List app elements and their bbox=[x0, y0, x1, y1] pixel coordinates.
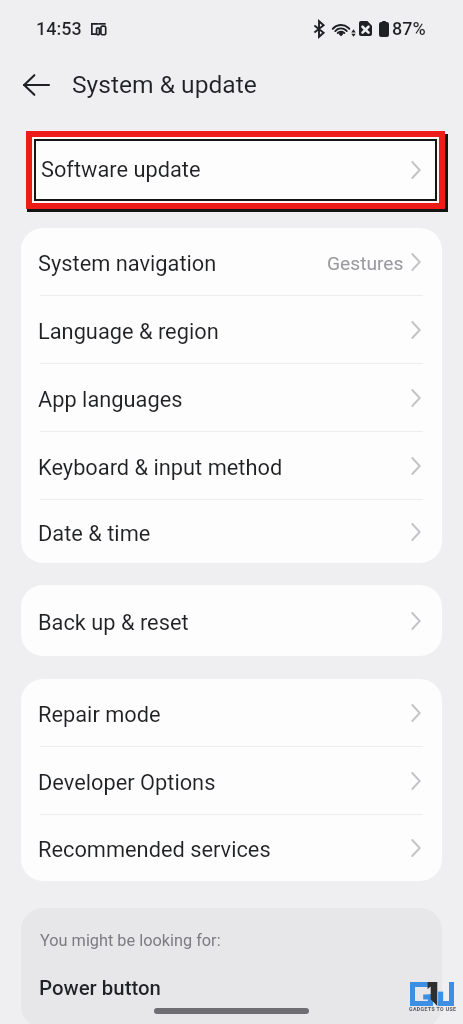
staticText: App languages bbox=[38, 387, 183, 413]
staticText: System navigation bbox=[38, 251, 217, 277]
button[interactable]: Developer Options bbox=[21, 747, 442, 814]
staticText: Developer Options bbox=[38, 770, 216, 796]
staticText: Software update bbox=[41, 157, 201, 183]
staticText: 87% bbox=[392, 18, 426, 39]
staticText: System & update bbox=[72, 70, 257, 99]
staticText: You might be looking for: bbox=[40, 931, 221, 950]
button[interactable]: Software update bbox=[36, 141, 435, 199]
button[interactable]: Back bbox=[16, 65, 56, 105]
staticText: Back up & reset bbox=[38, 610, 189, 636]
staticText: 14:53 bbox=[36, 18, 82, 39]
button[interactable]: Repair mode bbox=[21, 679, 442, 746]
button[interactable]: Language & region bbox=[21, 296, 442, 363]
staticText: Keyboard & input method bbox=[38, 455, 283, 481]
button[interactable]: Recommended services bbox=[21, 815, 442, 881]
button[interactable]: Date & time bbox=[21, 500, 442, 563]
staticText: Language & region bbox=[38, 319, 219, 345]
staticText: Date & time bbox=[38, 521, 151, 547]
staticText: Recommended services bbox=[38, 837, 271, 863]
staticText: Power button bbox=[39, 976, 161, 1000]
staticText: Repair mode bbox=[38, 702, 161, 728]
button[interactable]: System navigation bbox=[21, 228, 442, 295]
staticText: GADGETS TO USE bbox=[409, 1006, 457, 1012]
staticText: Gestures bbox=[327, 252, 404, 275]
button[interactable]: App languages bbox=[21, 364, 442, 431]
button[interactable]: Keyboard & input method bbox=[21, 432, 442, 499]
button[interactable]: Back up & reset bbox=[21, 585, 442, 656]
